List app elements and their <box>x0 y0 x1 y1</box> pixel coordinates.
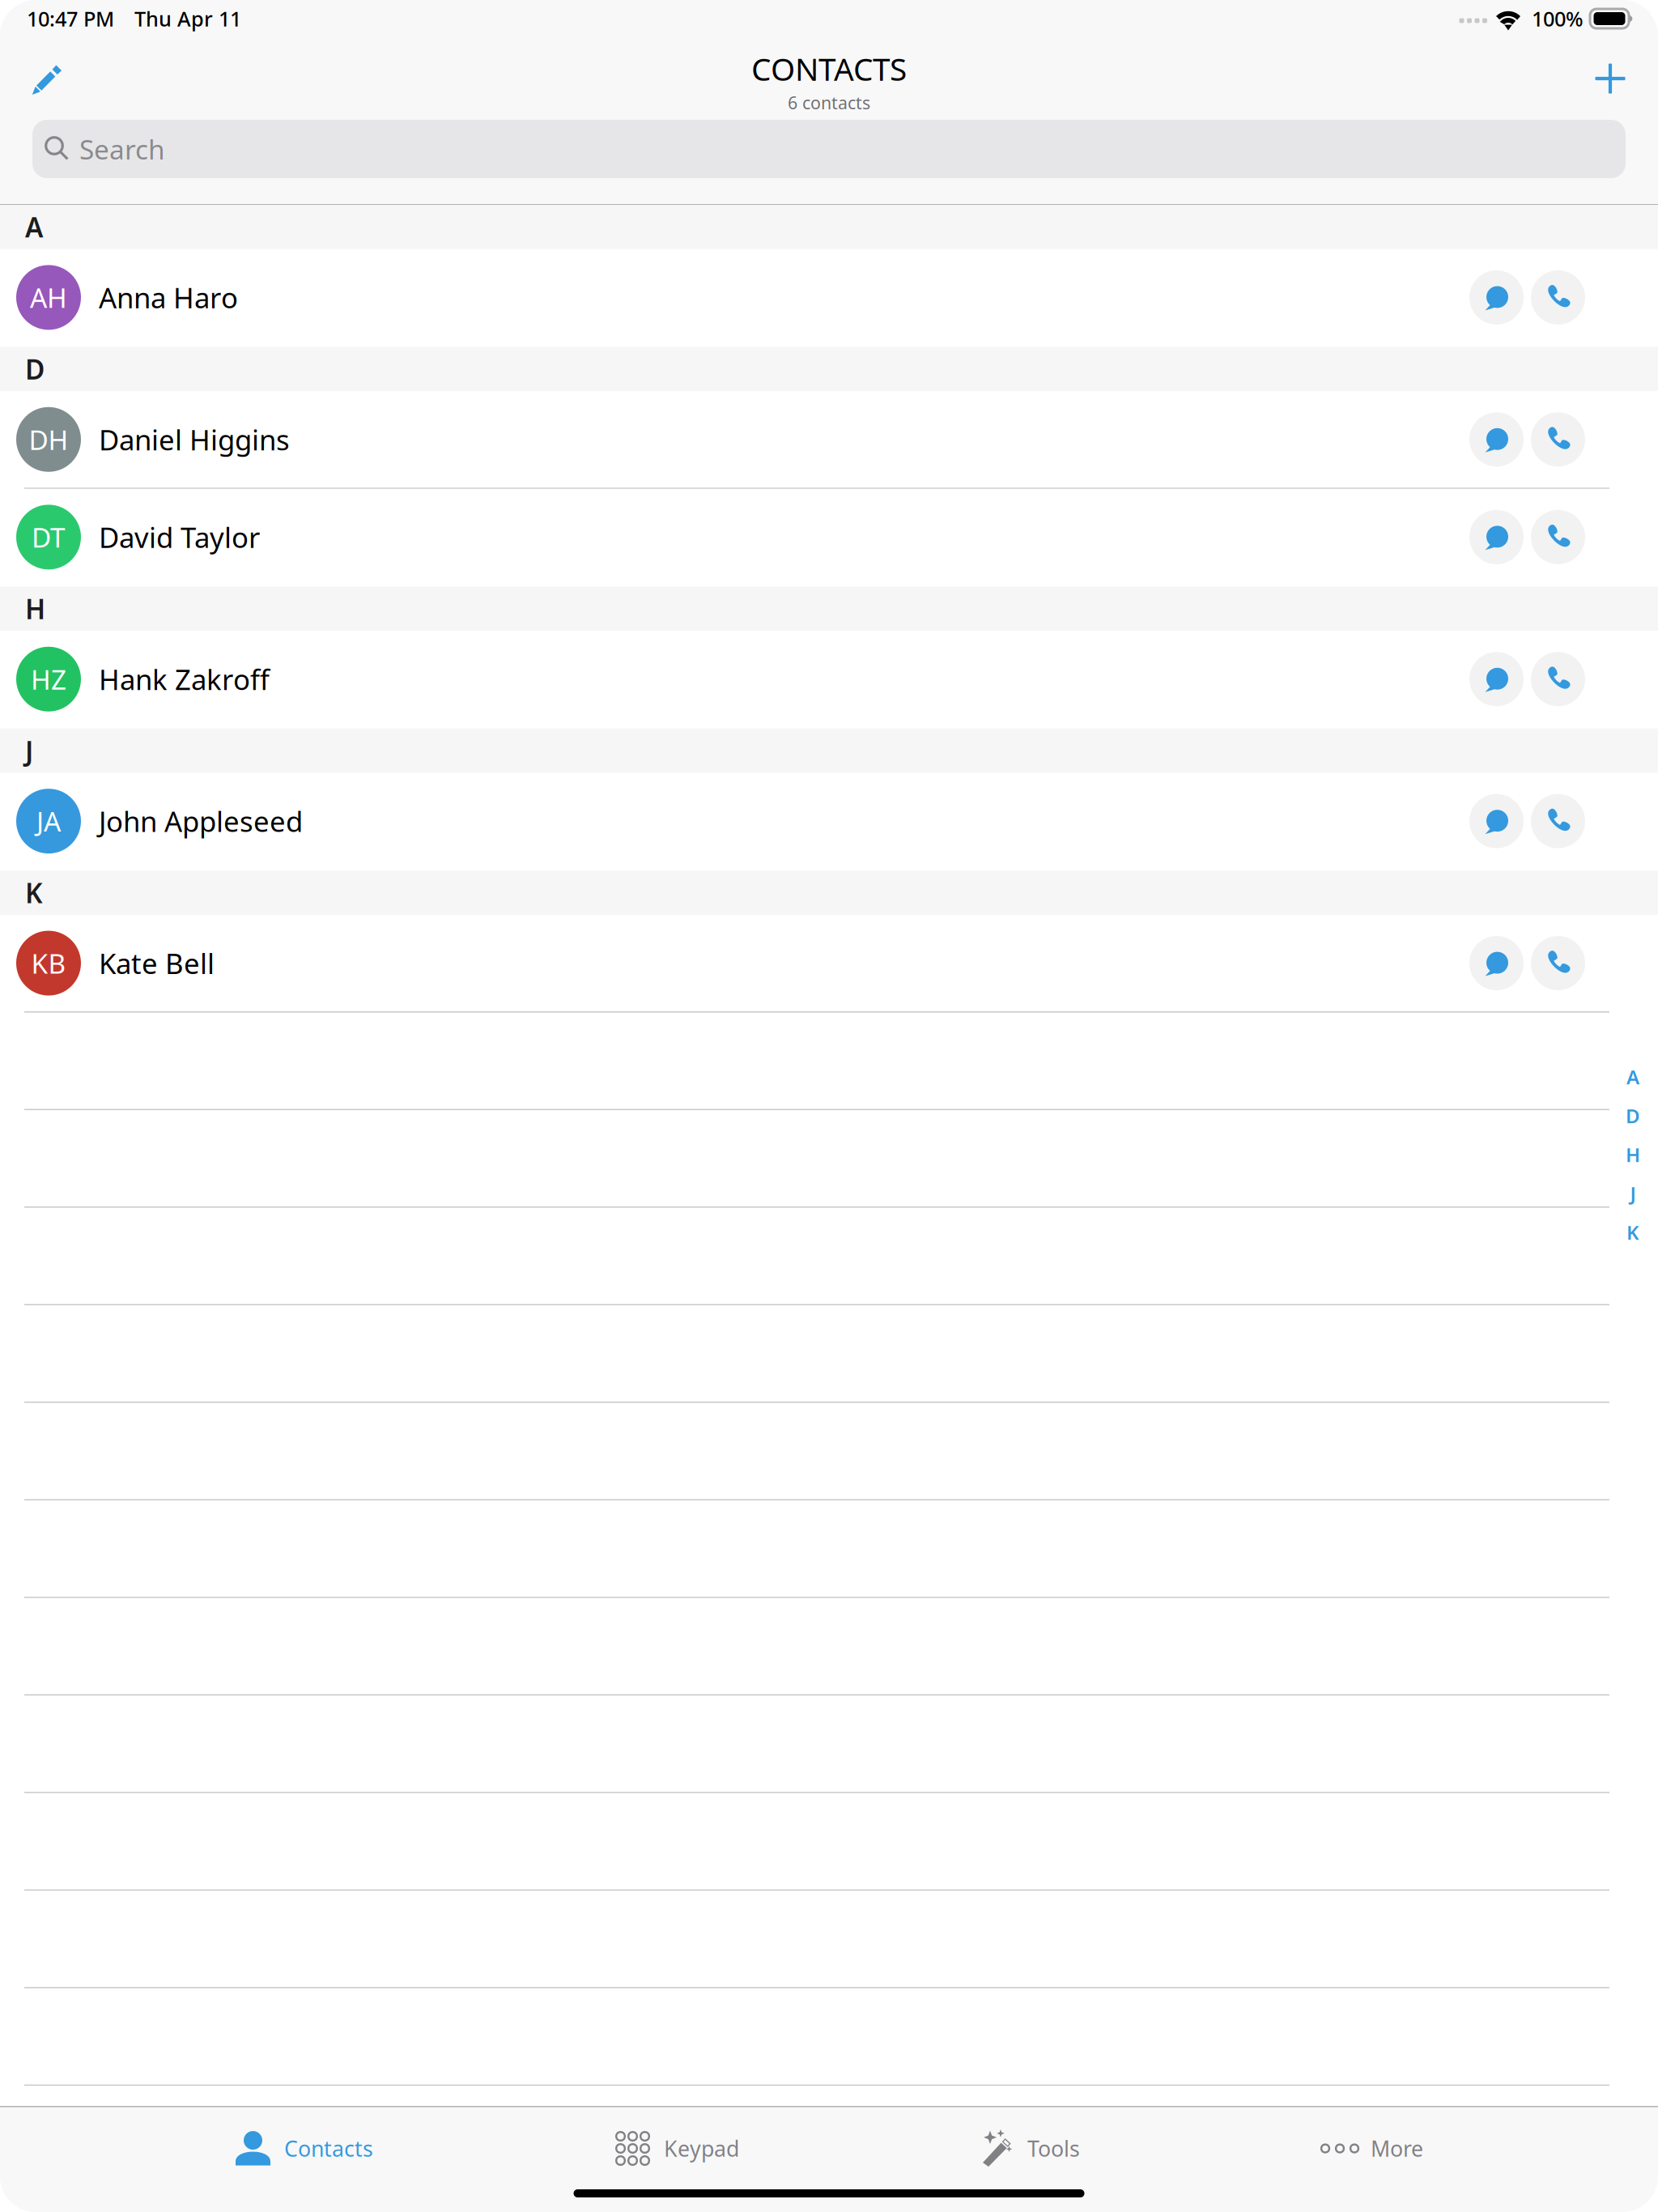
staticText: CONTACTS <box>751 48 907 89</box>
staticText: Tools <box>1027 2134 1080 2163</box>
staticText: DH <box>29 422 68 457</box>
staticText: Search <box>79 131 165 167</box>
staticText: Thu Apr 11 <box>134 5 241 32</box>
button[interactable]: Call David Taylor <box>1531 510 1585 564</box>
staticText: HZ <box>31 661 66 697</box>
button[interactable]: Keypad <box>615 2107 739 2179</box>
button[interactable]: A <box>1617 1057 1649 1096</box>
button[interactable]: More <box>1320 2107 1423 2179</box>
button[interactable]: Add contact <box>1571 40 1649 122</box>
staticText: 100% <box>1532 5 1584 32</box>
button[interactable]: Contacts <box>235 2107 373 2179</box>
button[interactable]: KB <box>0 915 1658 1011</box>
button[interactable]: Call Kate Bell <box>1531 936 1585 990</box>
staticText: KB <box>31 945 66 981</box>
button[interactable]: H <box>1617 1135 1649 1174</box>
button[interactable]: Message Daniel Higgins <box>1469 412 1524 467</box>
staticText: K <box>25 875 43 911</box>
staticText: A <box>1626 1064 1639 1090</box>
staticText: JA <box>36 803 61 839</box>
staticText: K <box>1626 1219 1639 1245</box>
staticText: Kate Bell <box>99 944 215 982</box>
staticText: D <box>25 351 45 387</box>
button[interactable]: Search <box>32 120 1626 178</box>
staticText: AH <box>30 279 67 315</box>
button[interactable]: DH <box>0 391 1658 488</box>
button[interactable]: AH <box>0 249 1658 346</box>
staticText: H <box>25 591 45 627</box>
button[interactable]: Message John Appleseed <box>1469 794 1524 848</box>
button[interactable]: Message David Taylor <box>1469 510 1524 564</box>
button[interactable]: DT <box>0 489 1658 585</box>
button[interactable]: Edit <box>9 42 87 120</box>
button[interactable]: Tools <box>981 2107 1080 2179</box>
button[interactable]: Message Hank Zakroff <box>1469 652 1524 706</box>
staticText: Daniel Higgins <box>99 421 290 458</box>
staticText: John Appleseed <box>99 802 303 840</box>
button[interactable]: Call Daniel Higgins <box>1531 412 1585 467</box>
button[interactable]: K <box>1617 1213 1649 1252</box>
staticText: DT <box>32 519 66 555</box>
button[interactable]: Call Hank Zakroff <box>1531 652 1585 706</box>
staticText: 6 contacts <box>788 91 870 114</box>
staticText: D <box>1626 1103 1640 1129</box>
button[interactable]: Call Anna Haro <box>1531 270 1585 325</box>
button[interactable]: J <box>1617 1174 1649 1213</box>
button[interactable]: JA <box>0 773 1658 869</box>
button[interactable]: Call John Appleseed <box>1531 794 1585 848</box>
staticText: H <box>1626 1142 1640 1168</box>
button[interactable]: HZ <box>0 631 1658 727</box>
button[interactable]: Message Kate Bell <box>1469 936 1524 990</box>
staticText: Hank Zakroff <box>99 660 270 698</box>
staticText: 10:47 PM <box>27 5 114 32</box>
staticText: David Taylor <box>99 518 260 556</box>
button[interactable]: D <box>1617 1096 1649 1135</box>
button[interactable]: Message Anna Haro <box>1469 270 1524 325</box>
staticText: J <box>1630 1181 1636 1206</box>
staticText: Contacts <box>284 2134 373 2163</box>
staticText: J <box>25 733 33 769</box>
staticText: Keypad <box>664 2134 739 2163</box>
staticText: Anna Haro <box>99 279 238 316</box>
staticText: More <box>1371 2134 1423 2163</box>
staticText: A <box>25 209 43 245</box>
